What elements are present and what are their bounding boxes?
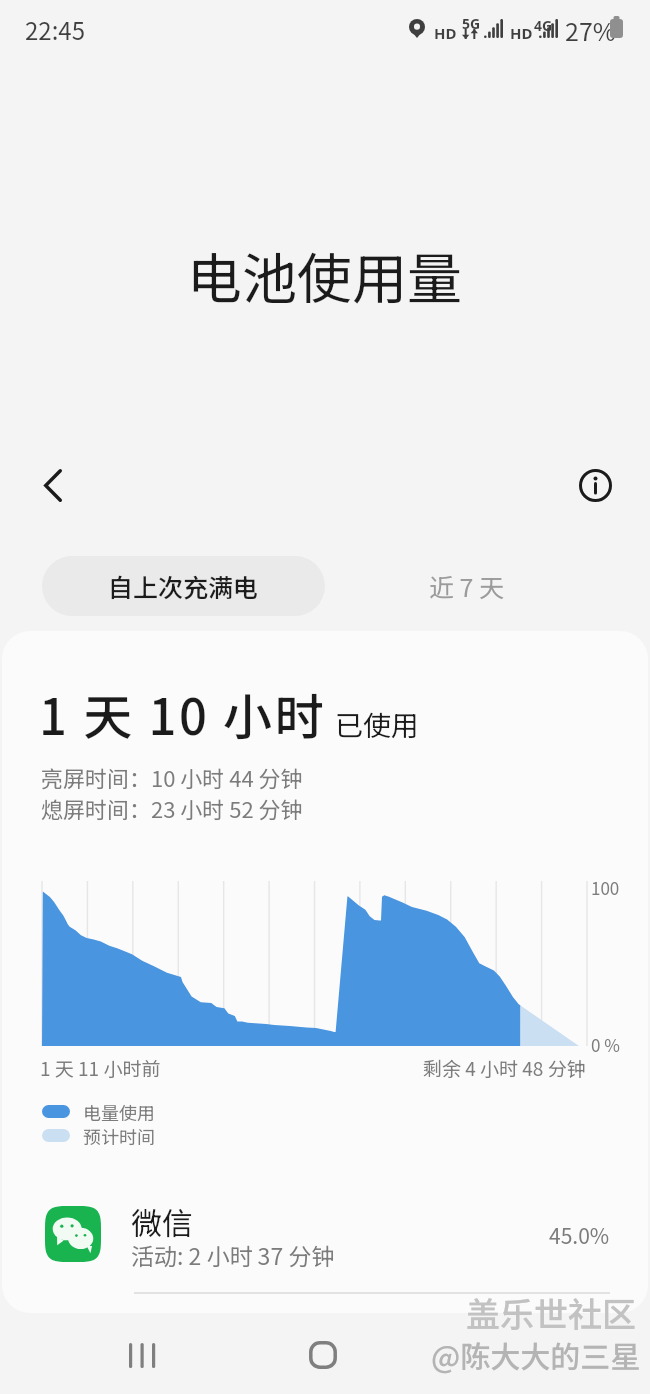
staticText: 1 天 10 小时 bbox=[39, 678, 327, 749]
staticText: 剩余 4 小时 48 分钟 bbox=[423, 1054, 586, 1082]
staticText: 45.0% bbox=[549, 1220, 610, 1250]
staticText: 电量使用 bbox=[83, 1099, 155, 1125]
staticText: 电池使用量 bbox=[187, 235, 463, 315]
staticText: 100 bbox=[591, 875, 620, 900]
staticText: 1 天 11 小时前 bbox=[40, 1054, 161, 1082]
staticText: 近 7 天 bbox=[429, 568, 505, 604]
staticText: 22:45 bbox=[25, 12, 85, 47]
button[interactable]: Home bbox=[280, 1313, 366, 1394]
staticText: 微信 bbox=[131, 1199, 193, 1244]
staticText: 预计时间 bbox=[83, 1123, 155, 1149]
button[interactable]: Information bbox=[567, 457, 623, 513]
staticText: 0 % bbox=[591, 1032, 620, 1057]
button[interactable]: 自上次充满电 bbox=[42, 556, 325, 616]
staticText: 亮屏时间：10 小时 44 分钟 bbox=[41, 761, 303, 793]
staticText: 已使用 bbox=[335, 704, 420, 745]
button[interactable]: 微信 bbox=[2, 1183, 648, 1277]
staticText: 自上次充满电 bbox=[108, 568, 259, 604]
button[interactable]: Recents bbox=[97, 1313, 183, 1394]
button[interactable]: Back bbox=[25, 457, 81, 513]
staticText: 27% bbox=[565, 12, 616, 48]
staticText: HD bbox=[434, 23, 457, 43]
staticText: 4G bbox=[534, 16, 553, 35]
staticText: 熄屏时间：23 小时 52 分钟 bbox=[41, 792, 303, 824]
staticText: @陈大大的三星 bbox=[431, 1333, 641, 1376]
button[interactable]: 近 7 天 bbox=[325, 556, 608, 616]
staticText: 活动: 2 小时 37 分钟 bbox=[131, 1238, 335, 1271]
staticText: HD bbox=[510, 23, 533, 43]
button[interactable]: Back bbox=[464, 1313, 550, 1394]
staticText: 5G bbox=[462, 14, 481, 33]
staticText: 盖乐世社区 bbox=[466, 1288, 636, 1337]
